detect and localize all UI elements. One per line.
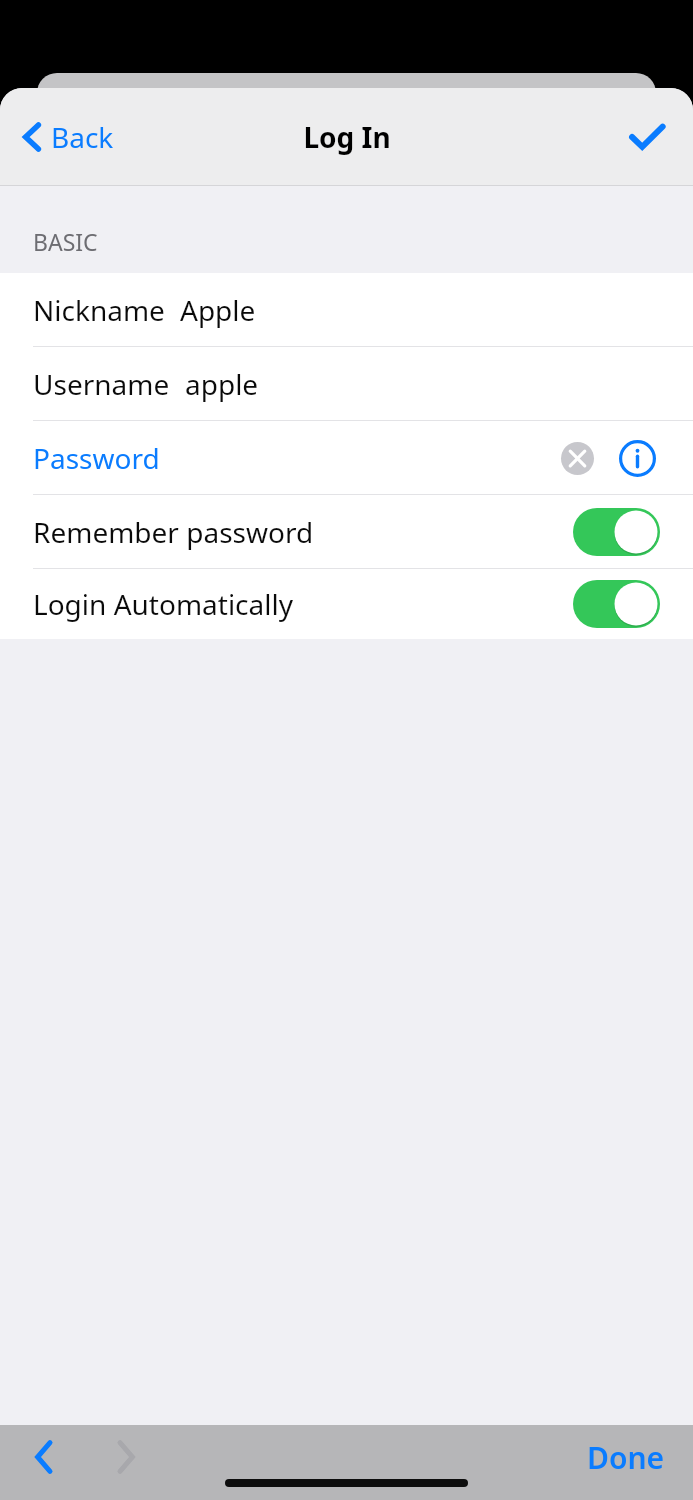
button[interactable]: Next field bbox=[96, 1427, 156, 1487]
staticText: apple bbox=[185, 365, 259, 403]
staticText: Log In bbox=[303, 118, 391, 156]
staticText: BASIC bbox=[33, 226, 98, 257]
staticText: Nickname bbox=[33, 291, 165, 329]
staticText: Login Automatically bbox=[33, 585, 293, 623]
button[interactable]: Login Automatically bbox=[0, 569, 693, 639]
button[interactable]: Toggle on bbox=[573, 508, 660, 556]
button[interactable]: Password bbox=[0, 421, 693, 494]
staticText: Remember password bbox=[33, 513, 314, 551]
button[interactable]: Done bbox=[577, 1431, 675, 1484]
button[interactable]: Remember password bbox=[0, 495, 693, 568]
staticText: Back bbox=[51, 118, 114, 156]
staticText: Done bbox=[587, 1437, 665, 1478]
button[interactable]: Toggle on bbox=[573, 580, 660, 628]
button[interactable]: Clear text bbox=[552, 433, 602, 483]
staticText: Apple bbox=[180, 291, 256, 329]
button[interactable]: Confirm bbox=[621, 111, 673, 163]
button[interactable]: Back bbox=[14, 110, 122, 164]
button[interactable]: Username bbox=[0, 347, 693, 420]
staticText: Password bbox=[33, 439, 160, 477]
button[interactable]: Information bbox=[612, 433, 662, 483]
button[interactable]: Previous field bbox=[14, 1427, 74, 1487]
staticText: Username bbox=[33, 365, 170, 403]
button[interactable]: Nickname bbox=[0, 273, 693, 346]
